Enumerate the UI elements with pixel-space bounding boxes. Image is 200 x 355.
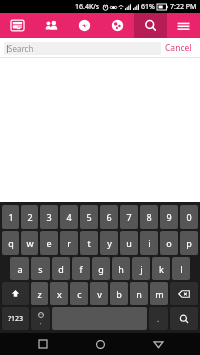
button[interactable]: 3 — [40, 205, 58, 229]
staticText: g — [98, 263, 104, 275]
staticText: r — [67, 237, 71, 249]
button[interactable]: e — [40, 231, 58, 255]
button[interactable]: v — [90, 282, 108, 305]
staticText: . — [157, 313, 160, 324]
staticText: f — [79, 263, 83, 275]
button[interactable]: r — [60, 231, 78, 255]
button[interactable]: Feed — [0, 13, 34, 38]
staticText: m — [155, 288, 164, 300]
button[interactable]: 1 — [2, 205, 19, 229]
staticText: 3 — [46, 211, 52, 223]
button[interactable]: k — [152, 257, 170, 280]
button[interactable]: b — [110, 282, 128, 305]
staticText: 1 — [8, 211, 14, 223]
staticText: d — [58, 263, 64, 275]
staticText: v — [97, 288, 102, 300]
button[interactable]: q — [2, 231, 19, 255]
staticText: z — [37, 288, 42, 300]
button[interactable]: Search — [134, 13, 167, 38]
button[interactable]: a — [10, 257, 29, 280]
button[interactable]: ?123 — [2, 307, 29, 330]
button[interactable]: y — [100, 231, 118, 255]
button[interactable]: g — [92, 257, 110, 280]
staticText: w — [26, 237, 34, 249]
staticText: 0 — [186, 211, 192, 223]
button[interactable]: Back — [143, 333, 173, 355]
staticText: 2 — [27, 211, 33, 223]
button[interactable]: Cancel — [161, 42, 196, 54]
button[interactable]: o — [160, 231, 178, 255]
button[interactable]: x — [50, 282, 68, 305]
button[interactable]: 9 — [160, 205, 178, 229]
button[interactable]: w — [21, 231, 38, 255]
staticText: Search — [8, 43, 34, 54]
staticText: 61% — [141, 2, 155, 12]
staticText: 16.4K/s — [75, 2, 100, 12]
button[interactable]: 6 — [100, 205, 118, 229]
staticText: o — [166, 237, 172, 249]
button[interactable]: Search — [170, 307, 198, 330]
button[interactable]: n — [130, 282, 148, 305]
button[interactable]: l — [172, 257, 190, 280]
button[interactable]: 5 — [80, 205, 98, 229]
staticText: 9 — [166, 211, 172, 223]
button[interactable]: Home — [85, 333, 115, 355]
staticText: b — [116, 288, 122, 300]
button[interactable]: 7 — [120, 205, 138, 229]
staticText: x — [57, 288, 62, 300]
staticText: k — [159, 263, 164, 275]
staticText: 7 — [126, 211, 132, 223]
button[interactable]: Search — [4, 42, 161, 55]
staticText: s — [38, 263, 43, 275]
button[interactable]: c — [70, 282, 88, 305]
staticText: 8 — [146, 211, 152, 223]
button[interactable]: m — [150, 282, 168, 305]
button[interactable]: Shift — [2, 282, 29, 305]
button[interactable]: Menu — [167, 13, 200, 38]
button[interactable]: z — [31, 282, 48, 305]
staticText: p — [186, 237, 192, 249]
button[interactable]: 2 — [21, 205, 38, 229]
button[interactable]: u — [120, 231, 138, 255]
staticText: , — [40, 318, 42, 326]
staticText: 5 — [86, 211, 92, 223]
staticText: y — [107, 237, 112, 249]
button[interactable]: Recents — [28, 333, 58, 355]
button[interactable]: . — [149, 307, 168, 330]
button[interactable]: p — [180, 231, 198, 255]
staticText: l — [180, 263, 183, 275]
button[interactable]: h — [112, 257, 130, 280]
button[interactable]: 0 — [180, 205, 198, 229]
staticText: h — [118, 263, 124, 275]
staticText: Cancel — [165, 42, 192, 54]
staticText: 4 — [66, 211, 72, 223]
staticText: u — [126, 237, 132, 249]
staticText: 6 — [106, 211, 112, 223]
staticText: i — [148, 237, 151, 249]
button[interactable]: t — [80, 231, 98, 255]
staticText: 7:22 PM — [170, 2, 197, 12]
button[interactable]: Emoji — [31, 307, 50, 330]
button[interactable]: Backspace — [170, 282, 198, 305]
button[interactable]: Messenger — [68, 13, 101, 38]
staticText: q — [8, 237, 14, 249]
button[interactable]: s — [31, 257, 50, 280]
button[interactable]: d — [52, 257, 70, 280]
staticText: t — [87, 237, 91, 249]
button[interactable]: 4 — [60, 205, 78, 229]
button[interactable]: i — [140, 231, 158, 255]
button[interactable]: 8 — [140, 205, 158, 229]
staticText: a — [17, 263, 23, 275]
staticText: n — [136, 288, 142, 300]
button[interactable]: Notifications — [101, 13, 134, 38]
button[interactable]: f — [72, 257, 90, 280]
staticText: e — [46, 237, 52, 249]
staticText: c — [77, 288, 82, 300]
staticText: j — [140, 263, 143, 275]
button[interactable]: j — [132, 257, 150, 280]
staticText: ?123 — [8, 314, 24, 324]
button[interactable]: Friends — [34, 13, 68, 38]
